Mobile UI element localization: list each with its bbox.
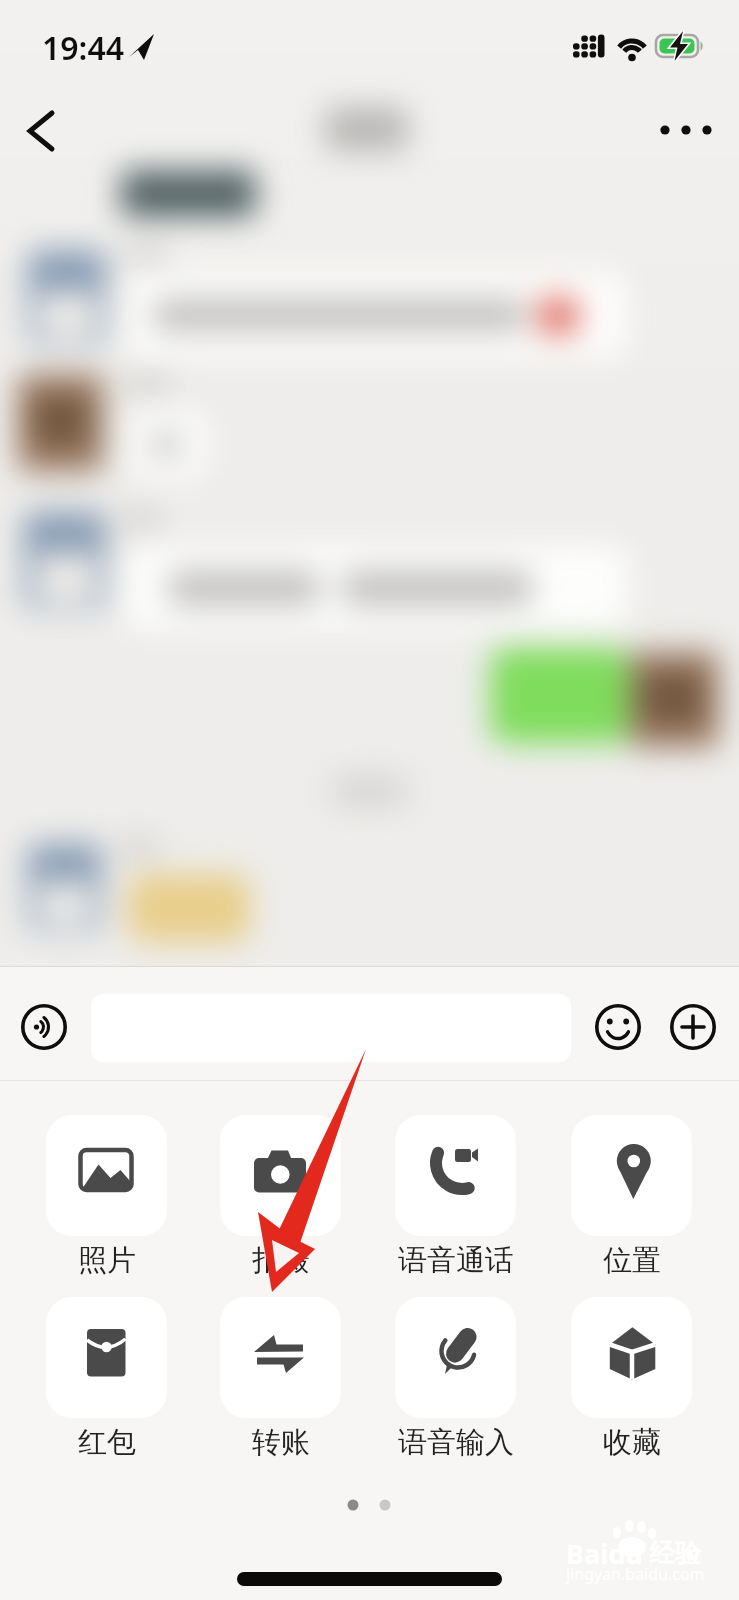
button[interactable] bbox=[571, 1115, 692, 1236]
button[interactable] bbox=[571, 1297, 692, 1418]
staticText: 语音通话 bbox=[398, 1242, 514, 1279]
button[interactable] bbox=[46, 1115, 167, 1236]
button[interactable] bbox=[650, 104, 724, 156]
button[interactable] bbox=[91, 994, 571, 1062]
button[interactable] bbox=[669, 1003, 717, 1051]
button[interactable] bbox=[46, 1297, 167, 1418]
staticText: jingyan.baidu.com bbox=[566, 1563, 705, 1585]
button[interactable] bbox=[20, 1003, 68, 1051]
staticText: 19:44 bbox=[42, 26, 125, 70]
staticText: 收藏 bbox=[603, 1424, 661, 1461]
staticText: 红包 bbox=[78, 1424, 136, 1461]
staticText: 经验 bbox=[649, 1537, 701, 1570]
staticText: 拍摄 bbox=[252, 1242, 310, 1279]
button[interactable] bbox=[220, 1115, 341, 1236]
button[interactable] bbox=[395, 1115, 516, 1236]
button[interactable] bbox=[220, 1297, 341, 1418]
button[interactable] bbox=[16, 100, 68, 160]
staticText: 照片 bbox=[78, 1242, 136, 1279]
button[interactable] bbox=[594, 1003, 642, 1051]
staticText: Baidu bbox=[566, 1535, 643, 1572]
button[interactable] bbox=[395, 1297, 516, 1418]
staticText: 语音输入 bbox=[398, 1424, 514, 1461]
staticText: 位置 bbox=[603, 1242, 661, 1279]
staticText: 转账 bbox=[252, 1424, 310, 1461]
